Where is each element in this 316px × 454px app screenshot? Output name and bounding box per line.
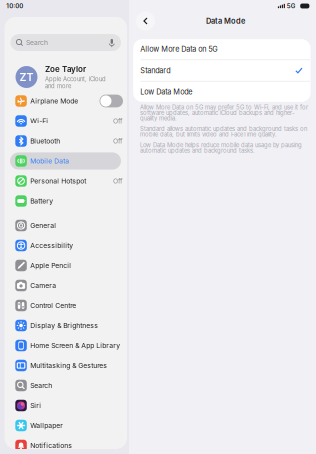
button[interactable]: Wi-Fi — [4, 111, 127, 131]
staticText: Control Centre — [30, 301, 76, 310]
button[interactable]: Search — [10, 34, 121, 51]
staticText: Siri — [30, 401, 41, 410]
button[interactable]: Display & Brightness — [4, 315, 127, 335]
button[interactable]: Low Data Mode — [133, 81, 311, 102]
staticText: Off — [113, 137, 123, 145]
staticText: Data Mode — [206, 16, 245, 25]
staticText: Wi-Fi — [30, 117, 48, 125]
staticText: Airplane Mode — [30, 97, 78, 105]
button[interactable]: Standard — [133, 60, 311, 81]
staticText: Low Data Mode helps reduce mobile data u… — [140, 141, 302, 154]
button[interactable]: ZT — [4, 63, 127, 91]
staticText: Battery — [30, 197, 53, 205]
button[interactable]: Home Screen & App Library — [4, 335, 127, 355]
staticText: Allow More Data on 5G — [140, 45, 217, 54]
staticText: ZT — [19, 70, 33, 83]
staticText: Low Data Mode — [140, 87, 192, 96]
button[interactable]: Notifications — [4, 435, 127, 454]
staticText: Standard — [140, 66, 170, 75]
staticText: Allow More Data on 5G may prefer 5G to W… — [140, 104, 308, 122]
staticText: Multitasking & Gestures — [30, 361, 107, 370]
button[interactable]: Allow More Data on 5G — [133, 39, 311, 59]
staticText: Bluetooth — [30, 137, 60, 145]
button[interactable]: Multitasking & Gestures — [4, 355, 127, 375]
button[interactable]: Wallpaper — [4, 415, 127, 435]
staticText: Apple Pencil — [30, 261, 71, 270]
button[interactable]: General — [4, 215, 127, 235]
staticText: Display & Brightness — [30, 321, 98, 330]
staticText: Camera — [30, 281, 56, 290]
button[interactable]: Apple Pencil — [4, 255, 127, 275]
button[interactable]: Accessibility — [4, 235, 127, 255]
staticText: Off — [113, 177, 123, 185]
button[interactable]: Search — [4, 375, 127, 395]
staticText: General — [30, 221, 56, 230]
staticText: Mobile Data — [30, 157, 69, 165]
staticText: Zoe Taylor — [45, 64, 86, 74]
button[interactable]: Battery — [4, 191, 127, 211]
staticText: Standard allows automatic updates and ba… — [140, 125, 307, 138]
staticText: Search — [30, 381, 52, 390]
button[interactable]: Back — [136, 11, 155, 30]
button[interactable]: Airplane Mode — [4, 91, 127, 111]
staticText: and more — [45, 83, 71, 90]
button[interactable]: Siri — [4, 395, 127, 415]
button[interactable]: Control Centre — [4, 295, 127, 315]
staticText: Search — [26, 38, 48, 47]
staticText: 5G — [287, 2, 296, 10]
staticText: Notifications — [30, 441, 72, 450]
staticText: Off — [113, 117, 123, 125]
staticText: 10:00 — [6, 2, 23, 10]
button[interactable]: Mobile Data — [4, 151, 127, 171]
staticText: Personal Hotspot — [30, 177, 86, 185]
staticText: Wallpaper — [30, 421, 63, 430]
button[interactable]: Bluetooth — [4, 131, 127, 151]
staticText: Accessibility — [30, 241, 73, 250]
staticText: Apple Account, iCloud — [45, 75, 106, 83]
button[interactable]: Camera — [4, 275, 127, 295]
staticText: Home Screen & App Library — [30, 341, 120, 350]
button[interactable]: Personal Hotspot — [4, 171, 127, 191]
